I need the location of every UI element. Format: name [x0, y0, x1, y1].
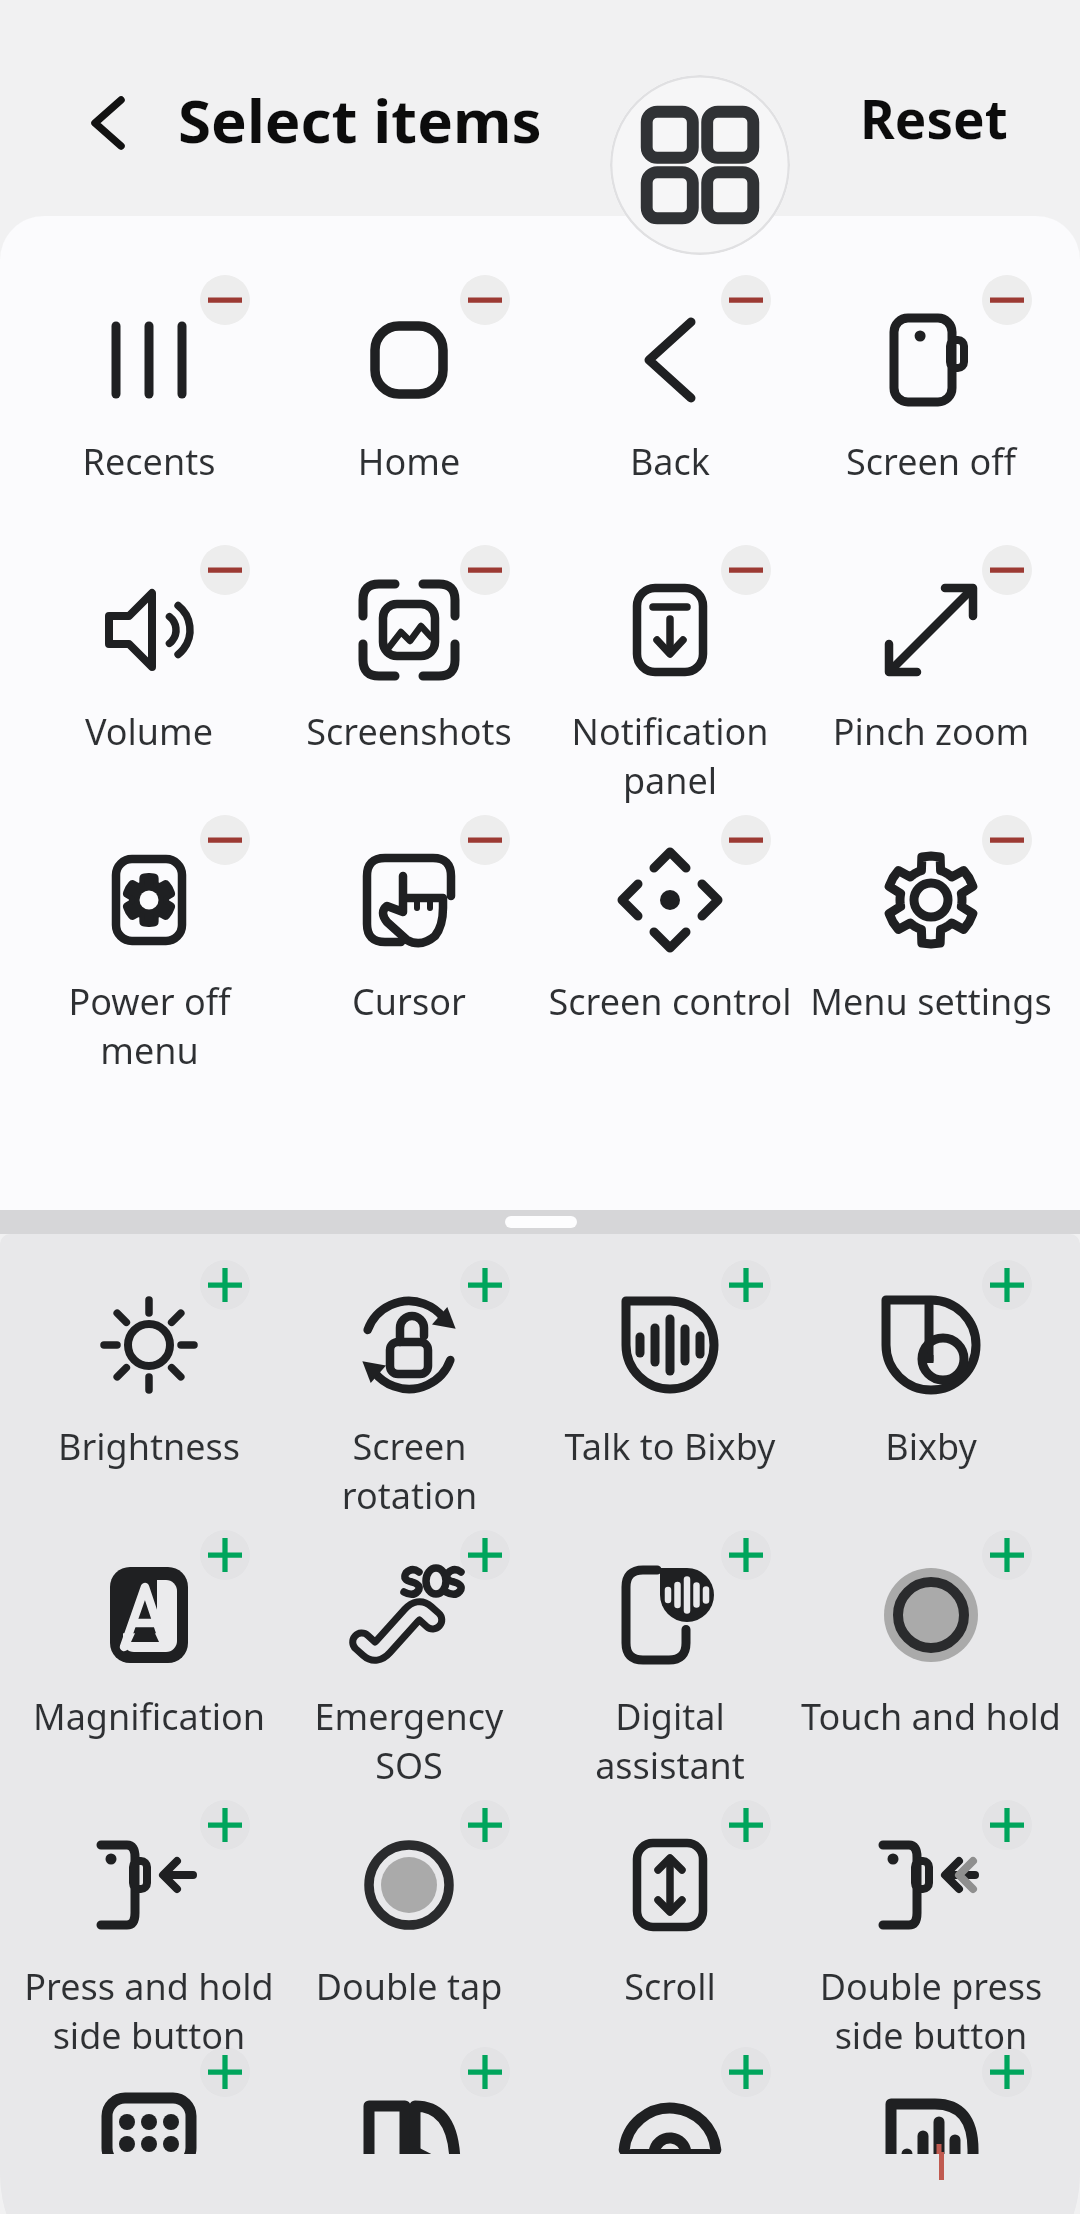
- staticText: Notification panel: [565, 707, 775, 804]
- button[interactable]: Keyboard: [19, 2062, 279, 2154]
- button[interactable]: Power off menu: [19, 830, 279, 1030]
- button[interactable]: Add Touch and hold: [982, 1530, 1032, 1580]
- button[interactable]: Bixby: [801, 1275, 1061, 1475]
- button[interactable]: Touch and hold: [801, 1545, 1061, 1745]
- staticText: Emergency SOS: [309, 1692, 509, 1789]
- staticText: Pinch zoom: [806, 707, 1056, 756]
- button[interactable]: Home: [279, 290, 539, 490]
- button[interactable]: Add Bixby: [982, 1260, 1032, 1310]
- staticText: Scroll: [545, 1962, 795, 2011]
- button[interactable]: Notification panel: [540, 560, 800, 760]
- button[interactable]: Back: [540, 290, 800, 490]
- button[interactable]: Add Split screen: [460, 2047, 510, 2097]
- staticText: Brightness: [24, 1422, 274, 1471]
- button[interactable]: Talk to Bixby: [540, 1275, 800, 1475]
- staticText: Screen rotation: [322, 1422, 497, 1519]
- button[interactable]: Add Talk to Bixby: [721, 1260, 771, 1310]
- button[interactable]: Quick tap: [540, 2062, 800, 2154]
- button[interactable]: Reset: [860, 82, 1008, 154]
- button[interactable]: Add Double press side button: [982, 1800, 1032, 1850]
- staticText: Back: [545, 437, 795, 486]
- button[interactable]: Add Brightness: [200, 1260, 250, 1310]
- staticText: Screen off: [806, 437, 1056, 486]
- button[interactable]: Add Sound: [982, 2047, 1032, 2097]
- staticText: Bixby: [806, 1422, 1056, 1471]
- staticText: Screen control: [541, 977, 799, 1026]
- button[interactable]: Assistant menu preview: [610, 75, 790, 255]
- button[interactable]: Add Emergency SOS: [460, 1530, 510, 1580]
- staticText: Menu settings: [802, 977, 1060, 1026]
- button[interactable]: Add Double tap: [460, 1800, 510, 1850]
- button[interactable]: Remove Volume: [200, 545, 250, 595]
- button[interactable]: Cursor: [279, 830, 539, 1030]
- staticText: Magnification: [24, 1692, 274, 1741]
- button[interactable]: Remove Home: [460, 275, 510, 325]
- button[interactable]: Recents: [19, 290, 279, 490]
- staticText: Screenshots: [284, 707, 534, 756]
- button[interactable]: Add Press and hold side button: [200, 1800, 250, 1850]
- staticText: Touch and hold: [801, 1692, 1061, 1741]
- button[interactable]: Press and hold side button: [19, 1815, 279, 2015]
- button[interactable]: Back: [54, 69, 162, 177]
- button[interactable]: Add Magnification: [200, 1530, 250, 1580]
- button[interactable]: Remove Menu settings: [982, 815, 1032, 865]
- staticText: Home: [284, 437, 534, 486]
- button[interactable]: Pinch zoom: [801, 560, 1061, 760]
- button[interactable]: Remove Screenshots: [460, 545, 510, 595]
- button[interactable]: Remove Power off menu: [200, 815, 250, 865]
- button[interactable]: Split screen: [279, 2062, 539, 2154]
- button[interactable]: Add Screen rotation: [460, 1260, 510, 1310]
- button[interactable]: Sound: [801, 2062, 1061, 2154]
- button[interactable]: Menu settings: [801, 830, 1061, 1030]
- button[interactable]: Remove Cursor: [460, 815, 510, 865]
- button[interactable]: Screen control: [540, 830, 800, 1030]
- button[interactable]: Brightness: [19, 1275, 279, 1475]
- button[interactable]: Double tap: [279, 1815, 539, 2015]
- staticText: Press and hold side button: [24, 1962, 274, 2059]
- button[interactable]: Remove Pinch zoom: [982, 545, 1032, 595]
- button[interactable]: Remove Screen off: [982, 275, 1032, 325]
- staticText: Select items: [178, 79, 542, 161]
- button[interactable]: Remove Screen control: [721, 815, 771, 865]
- button[interactable]: Screen off: [801, 290, 1061, 490]
- button[interactable]: Emergency SOS: [279, 1545, 539, 1745]
- button[interactable]: Screen rotation: [279, 1275, 539, 1475]
- button[interactable]: Add Quick tap: [721, 2047, 771, 2097]
- button[interactable]: Double press side button: [801, 1815, 1061, 2015]
- staticText: Double tap: [284, 1962, 534, 2011]
- staticText: Volume: [24, 707, 274, 756]
- staticText: Power off menu: [62, 977, 237, 1074]
- staticText: Digital assistant: [575, 1692, 765, 1789]
- button[interactable]: Digital assistant: [540, 1545, 800, 1745]
- staticText: Double press side button: [806, 1962, 1056, 2059]
- staticText: Recents: [24, 437, 274, 486]
- staticText: Talk to Bixby: [545, 1422, 795, 1471]
- button[interactable]: Remove Notification panel: [721, 545, 771, 595]
- button[interactable]: Add Scroll: [721, 1800, 771, 1850]
- button[interactable]: Add Digital assistant: [721, 1530, 771, 1580]
- button[interactable]: Screenshots: [279, 560, 539, 760]
- button[interactable]: Volume: [19, 560, 279, 760]
- staticText: Reset: [860, 82, 1008, 154]
- button[interactable]: Remove Back: [721, 275, 771, 325]
- button[interactable]: Magnification: [19, 1545, 279, 1745]
- button[interactable]: Remove Recents: [200, 275, 250, 325]
- staticText: Cursor: [284, 977, 534, 1026]
- button[interactable]: Scroll: [540, 1815, 800, 2015]
- button[interactable]: Add Keyboard: [200, 2047, 250, 2097]
